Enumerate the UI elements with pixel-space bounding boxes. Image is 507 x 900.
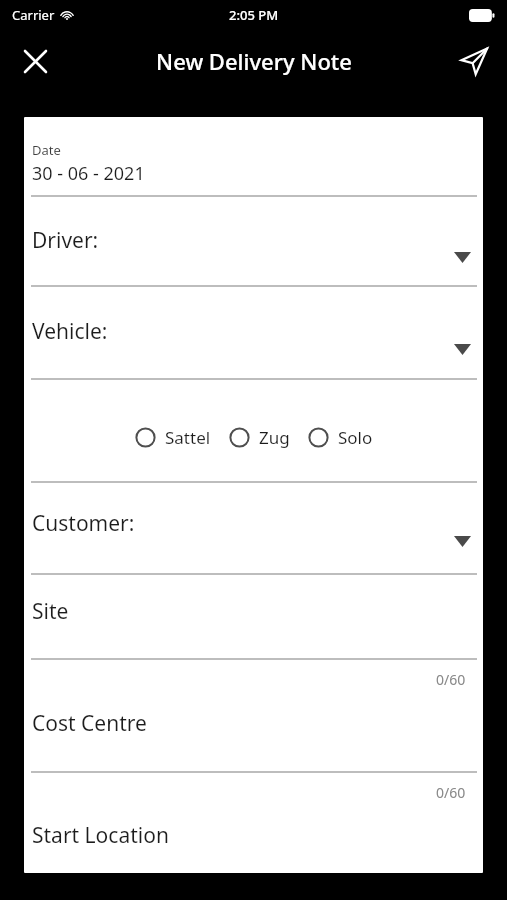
button[interactable]: Vehicle: (24, 315, 483, 349)
staticText: Solo (338, 426, 373, 449)
button[interactable]: Solo (308, 426, 373, 449)
staticText: Vehicle: (32, 317, 108, 346)
staticText: 2:05 PM (229, 6, 279, 24)
button[interactable]: Sattel (135, 426, 211, 449)
staticText: 30 - 06 - 2021 (32, 161, 145, 186)
button[interactable]: Close (14, 40, 56, 82)
staticText: Sattel (165, 426, 211, 449)
button[interactable]: Send (451, 38, 497, 84)
staticText: 0/60 (436, 670, 466, 689)
button[interactable]: Customer: (24, 507, 483, 541)
staticText: Date (32, 141, 61, 159)
staticText: Zug (259, 426, 290, 449)
staticText: Cost Centre (32, 709, 147, 738)
staticText: 0/60 (436, 783, 466, 802)
staticText: New Delivery Note (156, 46, 352, 76)
staticText: Start Location (32, 821, 169, 850)
staticText: Site (32, 597, 69, 626)
button[interactable]: Start Location (24, 819, 483, 853)
button[interactable]: Zug (229, 426, 290, 449)
button[interactable]: Cost Centre (24, 707, 483, 741)
staticText: Driver: (32, 226, 99, 255)
staticText: Carrier (12, 6, 55, 24)
button[interactable]: Site (24, 595, 483, 629)
button[interactable]: Driver: (24, 224, 483, 258)
staticText: Customer: (32, 509, 135, 538)
